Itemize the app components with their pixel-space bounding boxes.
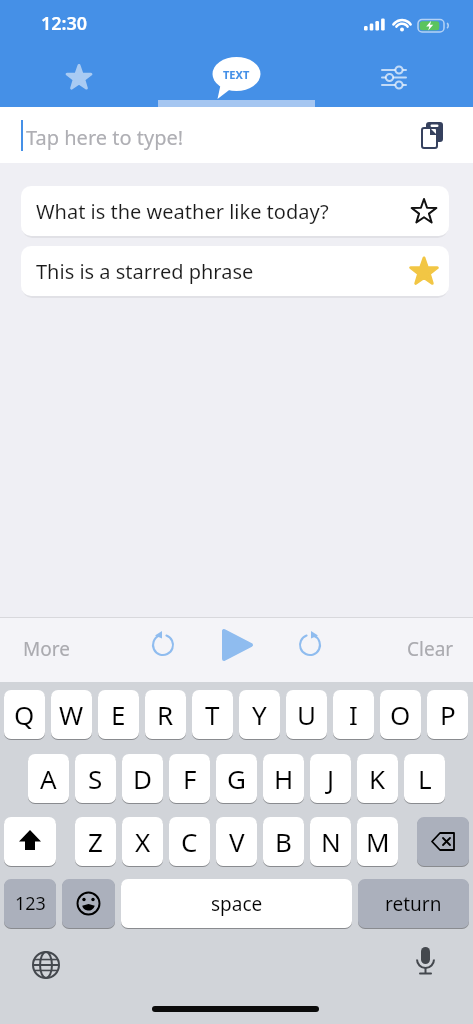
staticText: G (227, 761, 246, 796)
button[interactable]: F (169, 754, 210, 803)
button[interactable]: M (357, 817, 398, 866)
staticText: Clear (407, 636, 454, 662)
button[interactable]: V (216, 817, 257, 866)
staticText: This is a starred phrase (36, 258, 254, 285)
staticText: D (133, 761, 152, 796)
button[interactable] (62, 879, 115, 928)
button[interactable]: Q (4, 690, 45, 739)
staticText: I (349, 697, 358, 732)
staticText: O (390, 697, 411, 732)
staticText: E (111, 697, 126, 732)
button[interactable] (408, 112, 458, 158)
button[interactable]: P (427, 690, 468, 739)
button[interactable]: More (10, 625, 80, 673)
staticText: K (369, 761, 386, 796)
staticText: M (366, 824, 390, 859)
staticText: F (183, 761, 197, 796)
button[interactable] (287, 622, 333, 668)
button[interactable]: R (145, 690, 186, 739)
button[interactable]: L (404, 754, 445, 803)
button[interactable]: W (51, 690, 92, 739)
button[interactable] (213, 622, 259, 668)
button[interactable]: G (216, 754, 257, 803)
button[interactable]: C (169, 817, 210, 866)
button[interactable]: Y (239, 690, 280, 739)
staticText: H (274, 761, 294, 796)
button[interactable] (417, 817, 469, 866)
button[interactable]: B (263, 817, 304, 866)
staticText: C (181, 824, 198, 859)
button[interactable]: A (28, 754, 69, 803)
button[interactable]: What is the weather like today? (21, 186, 449, 236)
staticText: W (59, 697, 84, 732)
staticText: 12:30 (41, 11, 88, 36)
button[interactable]: O (380, 690, 421, 739)
button[interactable] (0, 45, 158, 107)
staticText: return (385, 891, 442, 917)
button[interactable]: U (286, 690, 327, 739)
staticText: B (275, 824, 292, 859)
button[interactable]: return (358, 879, 469, 928)
button[interactable]: This is a starred phrase (21, 246, 449, 296)
button[interactable] (4, 817, 56, 866)
button[interactable]: D (122, 754, 163, 803)
staticText: A (40, 761, 57, 796)
button[interactable] (315, 45, 473, 107)
staticText: R (157, 697, 174, 732)
button[interactable]: space (121, 879, 352, 928)
button[interactable]: TEXT (158, 45, 315, 107)
staticText: S (88, 761, 103, 796)
staticText: X (135, 824, 151, 859)
staticText: N (321, 824, 341, 859)
button[interactable] (27, 946, 65, 984)
staticText: L (418, 761, 432, 796)
staticText: P (440, 697, 456, 732)
button[interactable]: T (192, 690, 233, 739)
staticText: More (23, 636, 70, 662)
staticText: What is the weather like today? (36, 198, 329, 225)
button[interactable] (406, 942, 444, 986)
button[interactable]: Clear (393, 625, 463, 673)
button[interactable]: N (310, 817, 351, 866)
staticText: Q (14, 697, 35, 732)
staticText: 123 (15, 891, 46, 916)
button[interactable] (405, 192, 443, 230)
staticText: space (211, 891, 263, 917)
staticText: V (229, 824, 245, 859)
button[interactable]: Z (75, 817, 116, 866)
staticText: TEXT (223, 67, 250, 82)
button[interactable]: J (310, 754, 351, 803)
button[interactable]: I (333, 690, 374, 739)
button[interactable] (405, 252, 443, 290)
button[interactable]: 123 (4, 879, 56, 928)
staticText: Z (88, 824, 103, 859)
staticText: Y (252, 697, 267, 732)
button[interactable]: X (122, 817, 163, 866)
button[interactable]: E (98, 690, 139, 739)
staticText: Tap here to type! (26, 124, 184, 151)
button[interactable] (140, 622, 186, 668)
button[interactable]: H (263, 754, 304, 803)
button[interactable]: K (357, 754, 398, 803)
staticText: U (297, 697, 317, 732)
staticText: T (205, 697, 220, 732)
button[interactable] (0, 107, 473, 163)
staticText: J (327, 761, 335, 796)
button[interactable]: S (75, 754, 116, 803)
